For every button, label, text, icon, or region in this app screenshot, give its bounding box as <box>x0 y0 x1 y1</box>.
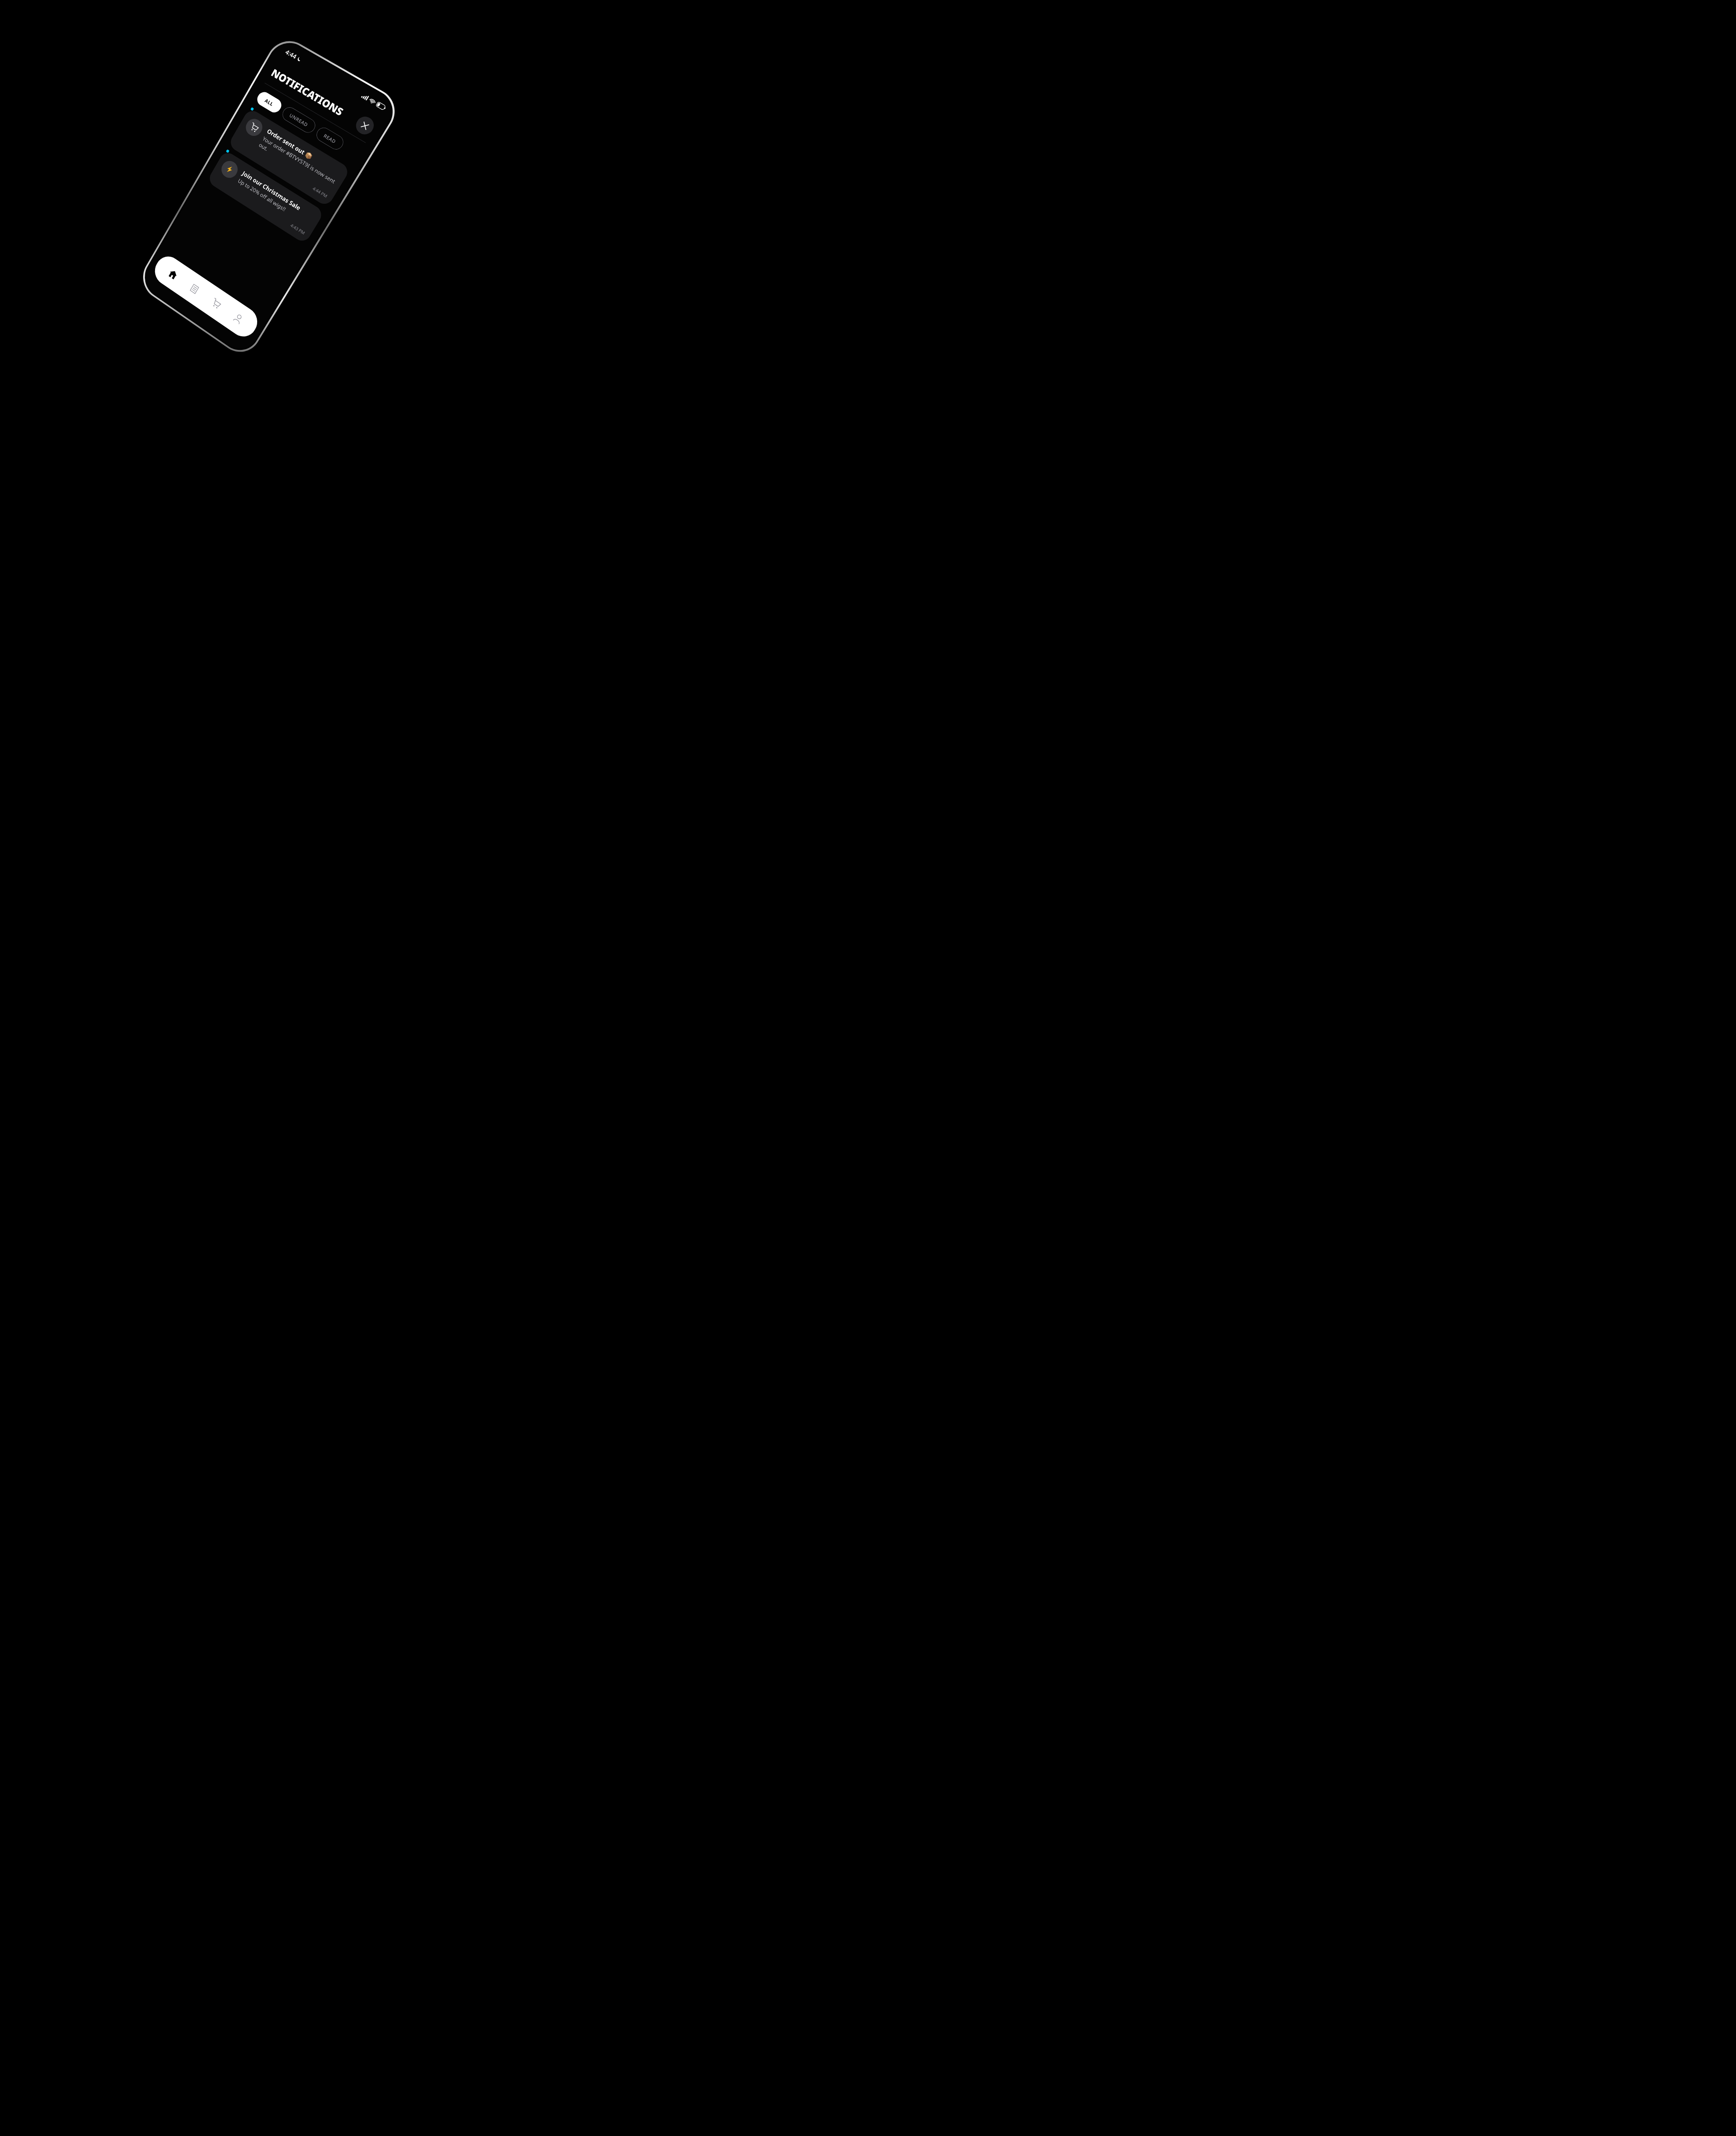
button[interactable]: Cart <box>202 288 230 319</box>
button[interactable]: Join our Christmas Sale <box>207 150 325 244</box>
button[interactable]: ALL <box>255 90 284 115</box>
staticText: Up to 20% off all wigs!! <box>237 177 287 213</box>
staticText: 4:43 PM <box>214 174 306 236</box>
staticText: NOTIFICATIONS <box>269 65 346 119</box>
button[interactable]: Profile <box>224 303 253 334</box>
button[interactable]: Home <box>159 259 187 289</box>
staticText: 4:44 PM <box>235 138 329 199</box>
button[interactable]: READ <box>314 125 346 152</box>
button[interactable]: Orders <box>180 274 209 304</box>
staticText: ALL <box>264 97 275 107</box>
button[interactable]: Close <box>353 113 377 138</box>
staticText: Your order #BTVY5T9I is now sent out. <box>258 135 337 192</box>
staticText: 4:44 <box>284 48 298 61</box>
button[interactable]: UNREAD <box>280 105 318 135</box>
staticText: Join our Christmas Sale <box>241 169 303 212</box>
staticText: READ <box>322 132 337 145</box>
staticText: Order sent out 📦 <box>266 127 314 161</box>
staticText: UNREAD <box>288 112 309 128</box>
button[interactable]: Order sent out 📦 <box>228 108 351 207</box>
